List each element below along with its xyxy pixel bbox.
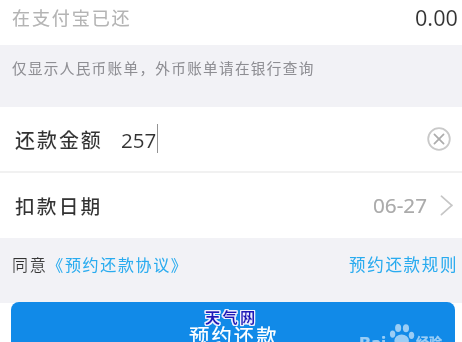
staticText: 天气网 [204,304,257,326]
staticText: 天气网 [206,304,259,326]
staticText: 同意《预约还款协议》 [12,252,189,275]
staticText: 257 [121,126,157,154]
button[interactable]: 预约还款规则 [349,252,459,276]
staticText: Bai [359,331,387,342]
staticText: 经验 [416,332,443,342]
staticText: 天气网 [206,305,259,327]
button[interactable]: 扣款日期 [0,172,462,237]
staticText: 扣款日期 [15,191,103,220]
staticText: 0.00 [415,3,458,32]
staticText: 天气网 [204,306,257,328]
staticText: 仅显示人民币账单，外币账单请在银行查询 [12,57,315,78]
staticText: 预约还款 [189,320,279,342]
staticText: 天气网 [205,304,258,326]
button[interactable]: 还款金额 [0,107,462,171]
button[interactable]: 同意《预约还款协议》 [12,252,189,275]
staticText: 还款金额 [15,125,103,154]
button[interactable]: 预约还款 [11,302,455,342]
staticText: 在支付宝已还 [12,4,132,30]
staticText: 天气网 [205,306,258,328]
button[interactable]: Clear amount [427,127,451,151]
staticText: 天气网 [204,305,257,327]
staticText: 06-27 [373,191,427,219]
staticText: 天气网 [206,306,259,328]
staticText: 预约还款规则 [349,252,459,276]
staticText: 天气网 [205,305,258,327]
